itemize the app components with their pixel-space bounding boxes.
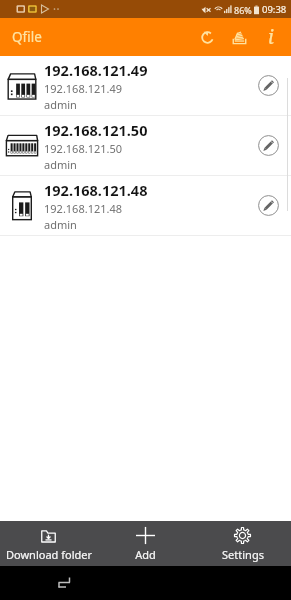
button[interactable]: Refresh — [191, 21, 223, 53]
staticText: 09:38 — [262, 3, 287, 16]
button[interactable]: Background tasks — [223, 21, 255, 53]
staticText: 192.168.121.49 — [44, 60, 148, 80]
staticText: Qfile — [12, 28, 42, 46]
button[interactable]: Edit server — [245, 56, 291, 115]
staticText: 192.168.121.48 — [44, 201, 123, 216]
staticText: i — [268, 24, 274, 50]
staticText: Add — [135, 547, 156, 562]
staticText: 86% — [234, 4, 252, 16]
button[interactable]: Edit server — [245, 176, 291, 235]
staticText: 192.168.121.49 — [44, 81, 123, 96]
button[interactable]: Download folder — [0, 521, 97, 566]
staticText: admin — [44, 217, 77, 232]
staticText: 192.168.121.50 — [44, 141, 123, 156]
button[interactable]: 192.168.121.48 — [0, 176, 291, 235]
button[interactable]: Settings — [194, 521, 291, 566]
button[interactable]: Information — [255, 21, 287, 53]
staticText: Settings — [222, 547, 264, 562]
button[interactable]: 192.168.121.50 — [0, 116, 291, 175]
button[interactable]: Edit server — [245, 116, 291, 175]
staticText: 192.168.121.50 — [44, 120, 148, 140]
staticText: 192.168.121.48 — [44, 180, 148, 200]
staticText: admin — [44, 157, 77, 172]
button[interactable]: 192.168.121.49 — [0, 56, 291, 115]
button[interactable]: Add — [97, 521, 194, 566]
staticText: admin — [44, 97, 77, 112]
staticText: Download folder — [6, 547, 92, 562]
